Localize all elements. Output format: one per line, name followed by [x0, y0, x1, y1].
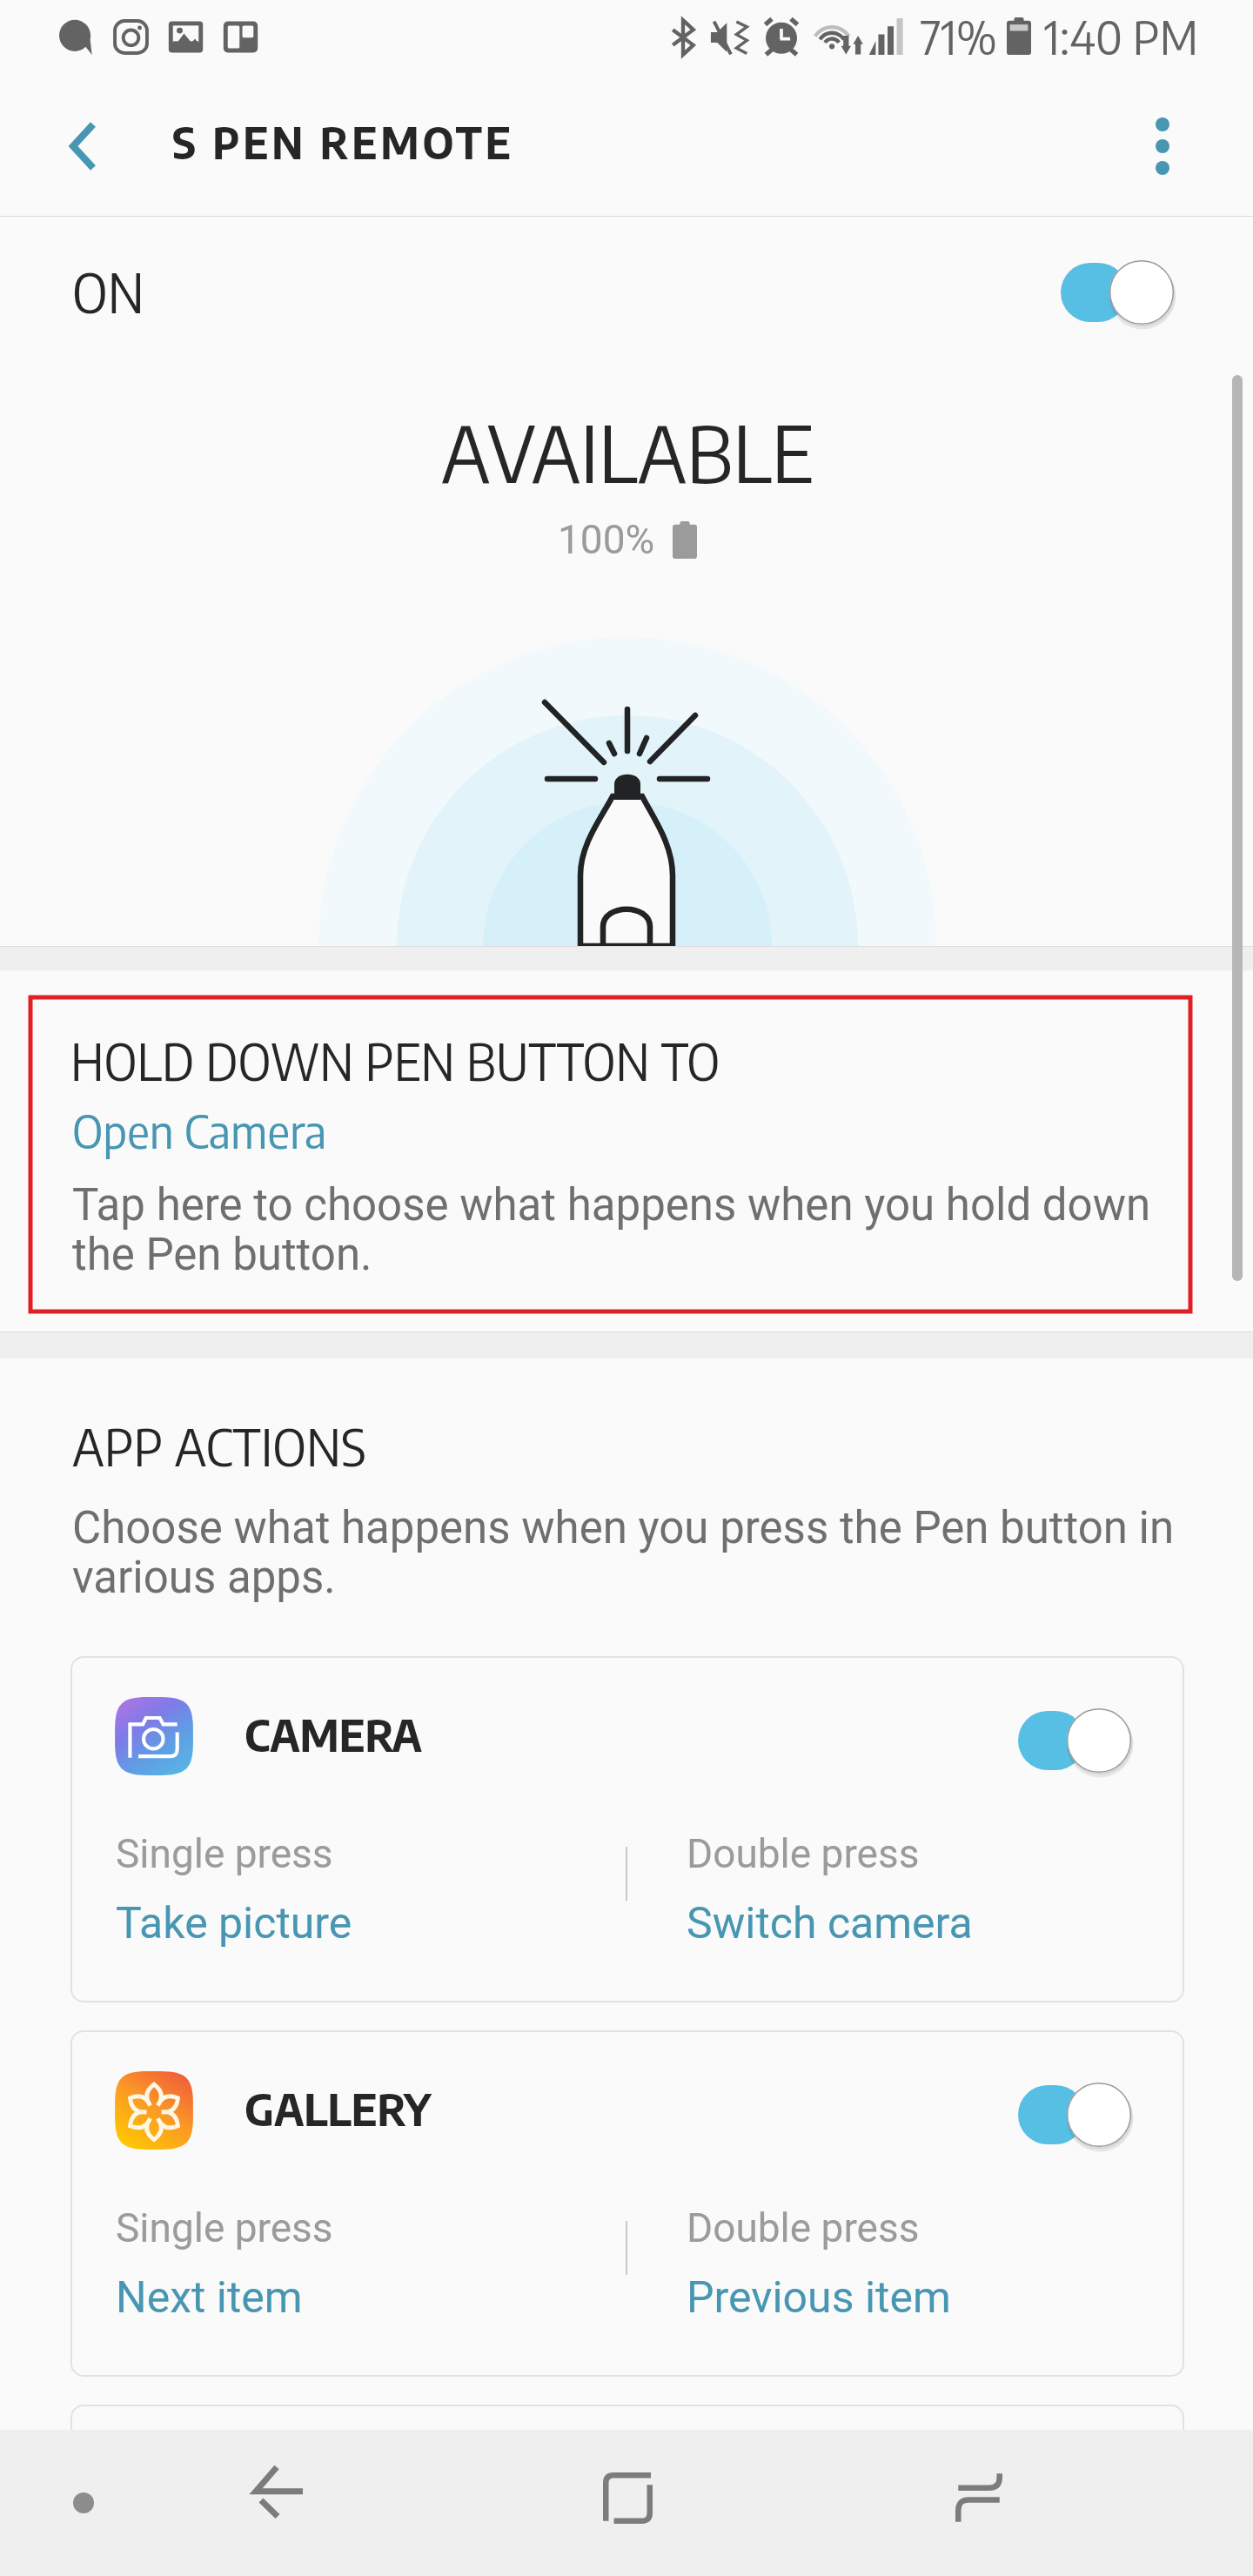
staticText: Next item	[116, 2272, 303, 2324]
staticText: CAMERA	[245, 1706, 422, 1761]
staticText: Take picture	[116, 1898, 352, 1949]
button[interactable]	[71, 2405, 1183, 2458]
staticText: Single press	[116, 1830, 333, 1877]
staticText: HOLD DOWN PEN BUTTON TO	[70, 1030, 720, 1091]
staticText: 71%	[921, 7, 997, 64]
staticText: Switch camera	[687, 1898, 973, 1949]
button[interactable]: HOLD DOWN PEN BUTTON TO	[0, 970, 1253, 1332]
button[interactable]: CAMERA	[71, 1657, 1183, 2002]
staticText: Single press	[116, 2204, 333, 2251]
staticText: Choose what happens when you press the P…	[72, 1502, 1182, 1604]
staticText: Previous item	[687, 2272, 951, 2324]
staticText: S PEN REMOTE	[172, 114, 514, 169]
staticText: Double press	[687, 2204, 920, 2251]
button[interactable]: Back	[236, 2449, 323, 2536]
staticText: Open Camera	[72, 1101, 327, 1158]
button[interactable]: ON	[0, 217, 1253, 352]
staticText: Double press	[687, 1830, 920, 1877]
button[interactable]: Recent apps	[935, 2454, 1022, 2541]
staticText: 1:40 PM	[1044, 7, 1198, 64]
staticText: AVAILABLE	[441, 403, 814, 500]
staticText: ON	[72, 258, 144, 325]
staticText: GALLERY	[245, 2080, 432, 2136]
staticText: APP ACTIONS	[72, 1414, 366, 1477]
staticText: 100%	[558, 516, 655, 563]
button[interactable]: Navigate up	[41, 104, 124, 188]
button[interactable]: More options	[1121, 104, 1204, 188]
button[interactable]: Home	[584, 2454, 671, 2541]
staticText: Tap here to choose what happens when you…	[72, 1179, 1162, 1281]
button[interactable]: GALLERY	[71, 2031, 1183, 2376]
